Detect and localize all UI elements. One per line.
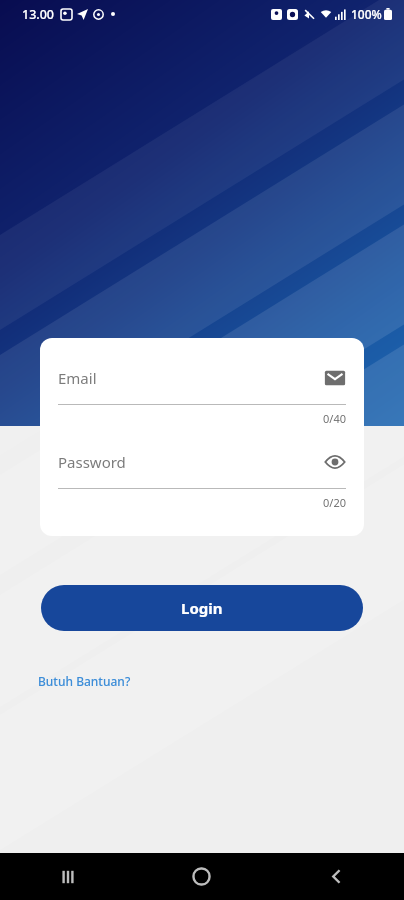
button[interactable]: Password [58, 446, 346, 478]
staticText: Butuh Bantuan? [38, 673, 131, 689]
staticText: 0/40 [323, 411, 346, 426]
staticText: Password [58, 452, 324, 472]
other: Email field [324, 367, 346, 389]
button[interactable]: Butuh Bantuan? [36, 670, 133, 692]
button[interactable]: Recent apps [0, 853, 134, 900]
button[interactable]: Home [134, 853, 269, 900]
staticText: 13.00 [22, 6, 55, 23]
button[interactable]: Back [269, 853, 404, 900]
staticText: Email [58, 368, 324, 388]
button[interactable]: Login [41, 585, 363, 631]
staticText: 0/20 [323, 495, 346, 510]
staticText: 100% [351, 6, 382, 22]
staticText: Login [181, 598, 223, 618]
button[interactable]: Email [58, 362, 346, 394]
button[interactable]: Show password [324, 451, 346, 473]
